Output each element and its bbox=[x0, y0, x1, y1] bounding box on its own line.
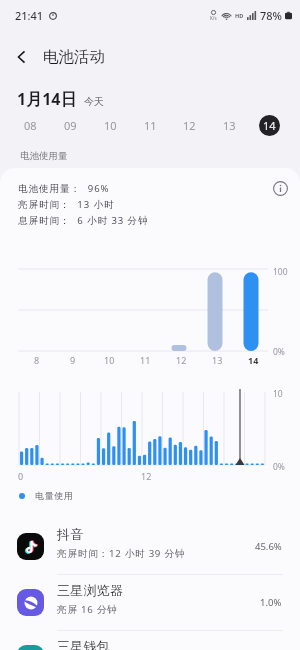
staticText: 78% bbox=[260, 8, 282, 23]
button[interactable]: 11 bbox=[136, 114, 164, 136]
staticText: 12 bbox=[176, 354, 187, 366]
staticText: 11 bbox=[140, 354, 151, 366]
staticText: 三星钱包 bbox=[57, 638, 110, 650]
staticText: 电量使用 bbox=[35, 490, 73, 501]
staticText: HD bbox=[235, 12, 244, 19]
staticText: 21:41 bbox=[15, 8, 44, 23]
button[interactable]: Information bbox=[268, 176, 292, 200]
staticText: 0% bbox=[273, 346, 285, 358]
staticText: 0 bbox=[18, 470, 24, 482]
staticText: 09 bbox=[64, 118, 77, 133]
staticText: 电池活动 bbox=[43, 47, 105, 67]
staticText: 10 bbox=[104, 354, 115, 366]
staticText: 亮屏 16 分钟 bbox=[57, 603, 118, 616]
staticText: 11 bbox=[144, 118, 157, 133]
button[interactable]: 14 bbox=[255, 114, 283, 136]
staticText: 抖音 bbox=[57, 526, 84, 542]
staticText: 08 bbox=[24, 118, 37, 133]
staticText: 100 bbox=[273, 266, 288, 278]
staticText: 电池使用量 bbox=[20, 150, 68, 162]
staticText: 9 bbox=[70, 354, 76, 366]
staticText: 13 bbox=[212, 354, 223, 366]
staticText: 12 bbox=[183, 118, 196, 133]
staticText: 13 bbox=[223, 118, 236, 133]
staticText: 12 bbox=[141, 470, 152, 482]
staticText: 今天 bbox=[84, 95, 104, 108]
button[interactable]: 10 bbox=[96, 114, 124, 136]
staticText: 10 bbox=[104, 118, 117, 133]
staticText: K/s bbox=[210, 15, 217, 21]
staticText: 1月14日 bbox=[17, 88, 77, 110]
button[interactable]: 抖音 bbox=[0, 519, 300, 574]
staticText: 0% bbox=[273, 461, 285, 473]
staticText: 14 bbox=[248, 354, 259, 366]
button[interactable]: 13 bbox=[215, 114, 243, 136]
staticText: 亮屏时间： 13 小时 bbox=[18, 198, 115, 211]
staticText: 亮屏时间：12 小时 39 分钟 bbox=[57, 547, 186, 560]
staticText: 8 bbox=[34, 354, 40, 366]
staticText: 1.0% bbox=[260, 596, 282, 609]
staticText: 三星浏览器 bbox=[57, 582, 123, 598]
button[interactable]: Back bbox=[6, 41, 38, 73]
staticText: 息屏时间： 6 小时 33 分钟 bbox=[18, 214, 149, 227]
button[interactable]: 三星浏览器 bbox=[0, 575, 300, 630]
button[interactable]: 三星钱包 bbox=[0, 631, 300, 650]
staticText: 10 bbox=[273, 388, 283, 400]
staticText: 45.6% bbox=[255, 540, 282, 553]
staticText: 电池使用量： 96% bbox=[18, 182, 110, 195]
button[interactable]: 12 bbox=[175, 114, 203, 136]
button[interactable]: 09 bbox=[56, 114, 84, 136]
staticText: 14 bbox=[263, 118, 276, 133]
button[interactable]: 08 bbox=[16, 114, 44, 136]
